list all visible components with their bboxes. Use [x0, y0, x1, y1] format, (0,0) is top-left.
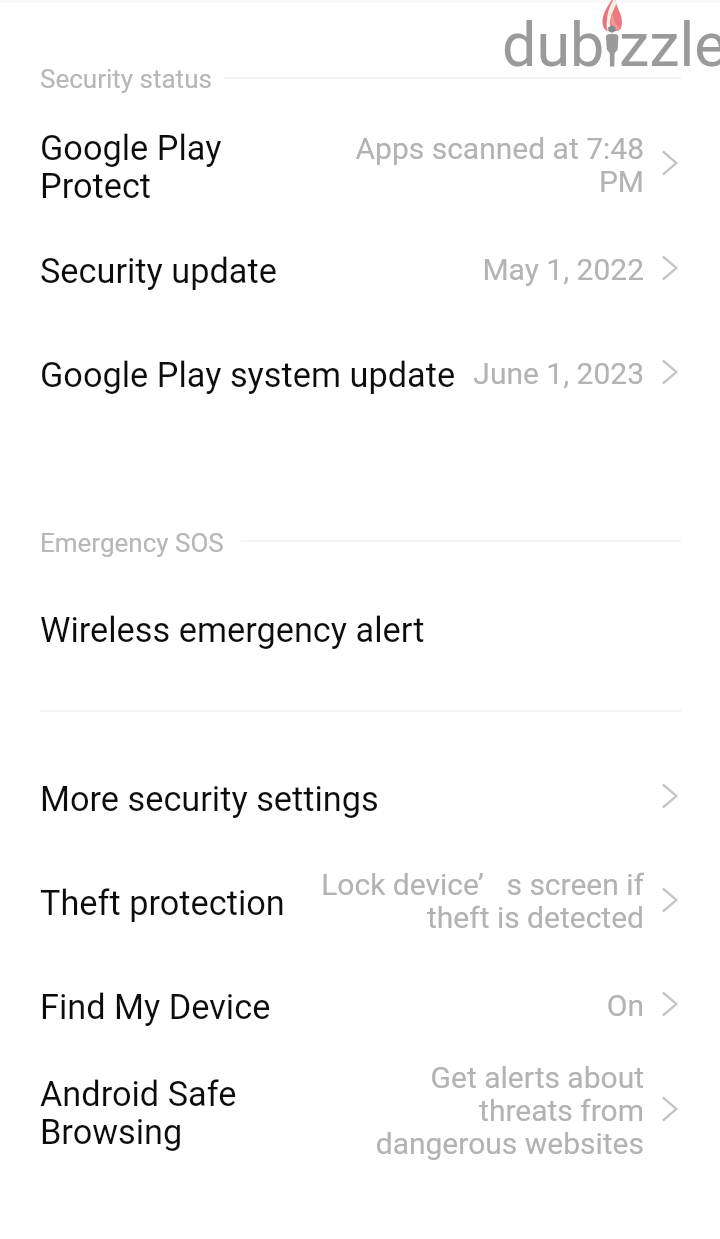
staticText: Security update: [40, 251, 277, 291]
staticText: Wireless emergency alert: [40, 610, 425, 650]
button[interactable]: More security settings: [0, 758, 720, 836]
staticText: dub: [502, 9, 605, 80]
staticText: More security settings: [40, 779, 379, 819]
button[interactable]: Google Play system update: [0, 334, 720, 410]
staticText: Find My Device: [40, 987, 271, 1027]
staticText: Android Safe Browsing: [40, 1074, 237, 1152]
staticText: Security status: [40, 64, 212, 94]
other: Open More security settings: [648, 774, 692, 818]
staticText: Google Play system update: [40, 355, 456, 395]
staticText: Emergency SOS: [40, 528, 224, 558]
other: Open Google Play system update: [648, 350, 692, 394]
staticText: zzle: [619, 9, 720, 80]
button[interactable]: Wireless emergency alert: [0, 590, 720, 666]
button[interactable]: Google Play Protect: [0, 106, 720, 222]
other: Open Find My Device: [648, 982, 692, 1026]
staticText: May 1, 2022: [344, 252, 644, 287]
button[interactable]: Security update: [0, 230, 720, 306]
button[interactable]: Find My Device: [0, 966, 720, 1044]
staticText: Apps scanned at 7:48 PM: [344, 131, 644, 200]
button[interactable]: Android Safe Browsing: [0, 1052, 720, 1168]
staticText: Theft protection: [40, 883, 285, 923]
other: Open Android Safe Browsing: [648, 1087, 692, 1131]
other: Open Security update: [648, 246, 692, 290]
staticText: On: [524, 988, 644, 1023]
staticText: Lock device’ s screen if theft is detect…: [304, 867, 644, 936]
staticText: Google Play Protect: [40, 128, 222, 206]
other: Open Theft protection: [648, 878, 692, 922]
button[interactable]: Theft protection: [0, 860, 720, 942]
staticText: June 1, 2023: [384, 356, 644, 391]
other: Open Google Play Protect: [648, 141, 692, 185]
staticText: Get alerts about threats from dangerous …: [354, 1060, 644, 1162]
